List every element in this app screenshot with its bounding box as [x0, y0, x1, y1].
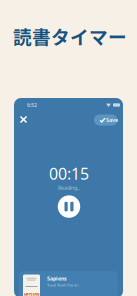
- staticText: Reading...: [58, 184, 80, 191]
- staticText: Save: [106, 116, 118, 124]
- staticText: 00:15: [49, 163, 89, 184]
- button[interactable]: Pause: [58, 195, 80, 218]
- staticText: Yuval Noah Harari: [47, 282, 79, 288]
- staticText: 読書タイマー: [13, 22, 127, 49]
- button[interactable]: Close: [16, 112, 31, 127]
- staticText: SAPIENS: [23, 291, 39, 296]
- staticText: Sapiens: [47, 275, 67, 282]
- button[interactable]: Save: [94, 114, 117, 125]
- button[interactable]: SAPIENS: [19, 271, 117, 296]
- staticText: 6:52: [27, 101, 37, 109]
